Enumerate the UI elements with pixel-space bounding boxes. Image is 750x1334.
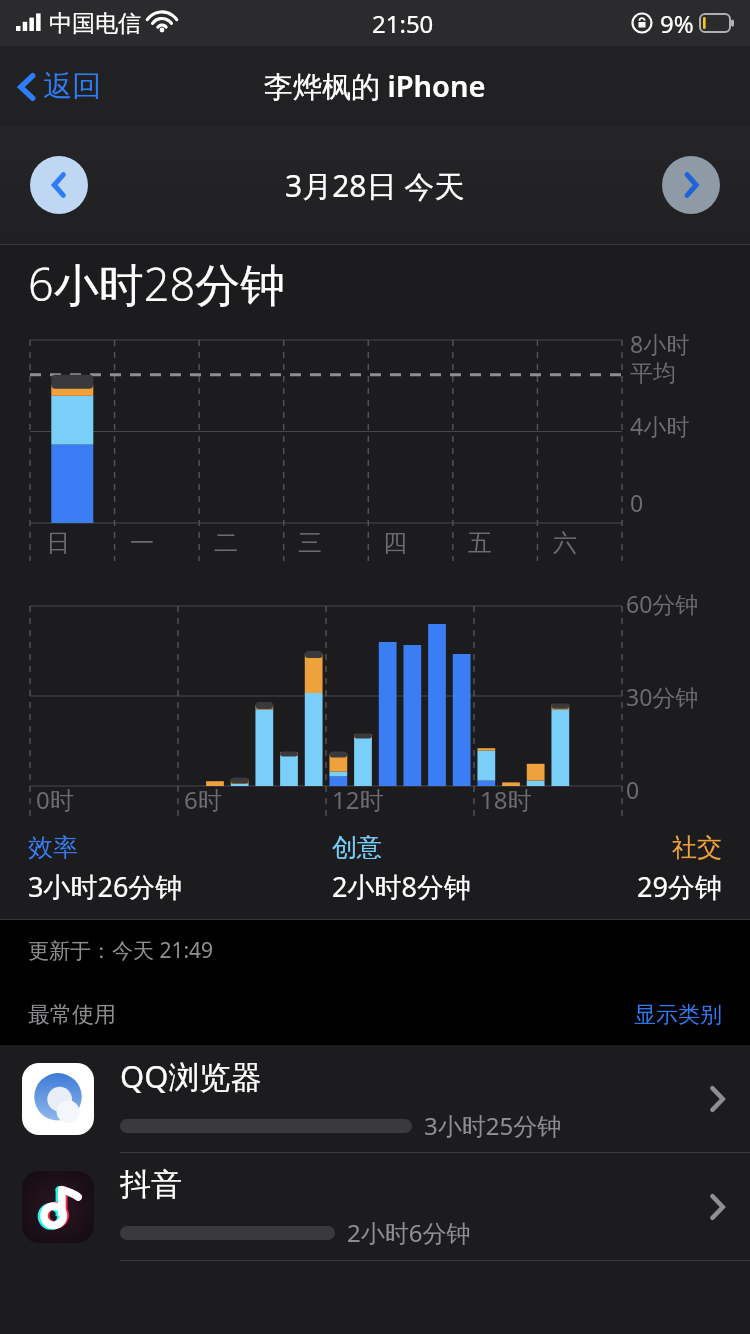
staticText: 社交 xyxy=(672,832,722,863)
staticText: 二 xyxy=(214,528,238,558)
staticText: 三 xyxy=(298,528,322,558)
staticText: 六 xyxy=(553,528,577,558)
staticText: 最常使用 xyxy=(28,1001,116,1029)
staticText: 29分钟 xyxy=(637,868,722,905)
staticText: 0 xyxy=(626,774,640,805)
staticText: 30分钟 xyxy=(626,681,699,712)
staticText: 效率 xyxy=(28,832,78,863)
staticText: 8小时 xyxy=(630,328,690,359)
staticText: 6时 xyxy=(184,783,222,816)
staticText: 0 xyxy=(630,487,644,518)
other: Details for 抖音 xyxy=(708,1190,728,1224)
button[interactable]: 返回 xyxy=(14,68,101,105)
button[interactable]: Previous day xyxy=(30,156,88,214)
staticText: 五 xyxy=(468,528,492,558)
staticText: 抖音 xyxy=(120,1165,182,1204)
staticText: 4小时 xyxy=(630,410,690,441)
staticText: 更新于：今天 21:49 xyxy=(28,936,214,965)
staticText: 创意 xyxy=(332,832,382,863)
staticText: 平均 xyxy=(630,359,676,388)
staticText: 21:50 xyxy=(372,7,434,40)
staticText: 2小时6分钟 xyxy=(347,1216,471,1249)
staticText: 四 xyxy=(383,528,407,558)
staticText: 18时 xyxy=(480,783,532,816)
staticText: 3小时25分钟 xyxy=(424,1109,562,1142)
button[interactable]: Next day xyxy=(662,156,720,214)
staticText: 0时 xyxy=(36,783,74,816)
staticText: 显示类别 xyxy=(634,1001,722,1029)
staticText: 12时 xyxy=(332,783,384,816)
staticText: 60分钟 xyxy=(626,588,699,619)
staticText: 李烨枫的 iPhone xyxy=(264,66,486,106)
button[interactable]: 显示类别 xyxy=(634,1001,722,1029)
staticText: 6小时28分钟 xyxy=(28,253,286,314)
staticText: 返回 xyxy=(43,68,101,105)
staticText: 一 xyxy=(130,528,154,558)
staticText: 9% xyxy=(660,7,694,40)
staticText: 中国电信 xyxy=(49,9,141,38)
staticText: 3小时26分钟 xyxy=(28,868,183,905)
other: Details for QQ浏览器 xyxy=(708,1082,728,1116)
staticText: 日 xyxy=(46,528,70,558)
staticText: 3月28日 今天 xyxy=(285,165,465,206)
button[interactable]: QQ浏览器 xyxy=(0,1045,750,1152)
staticText: QQ浏览器 xyxy=(120,1055,262,1097)
button[interactable]: 抖音 xyxy=(0,1153,750,1260)
staticText: 2小时8分钟 xyxy=(332,868,471,905)
